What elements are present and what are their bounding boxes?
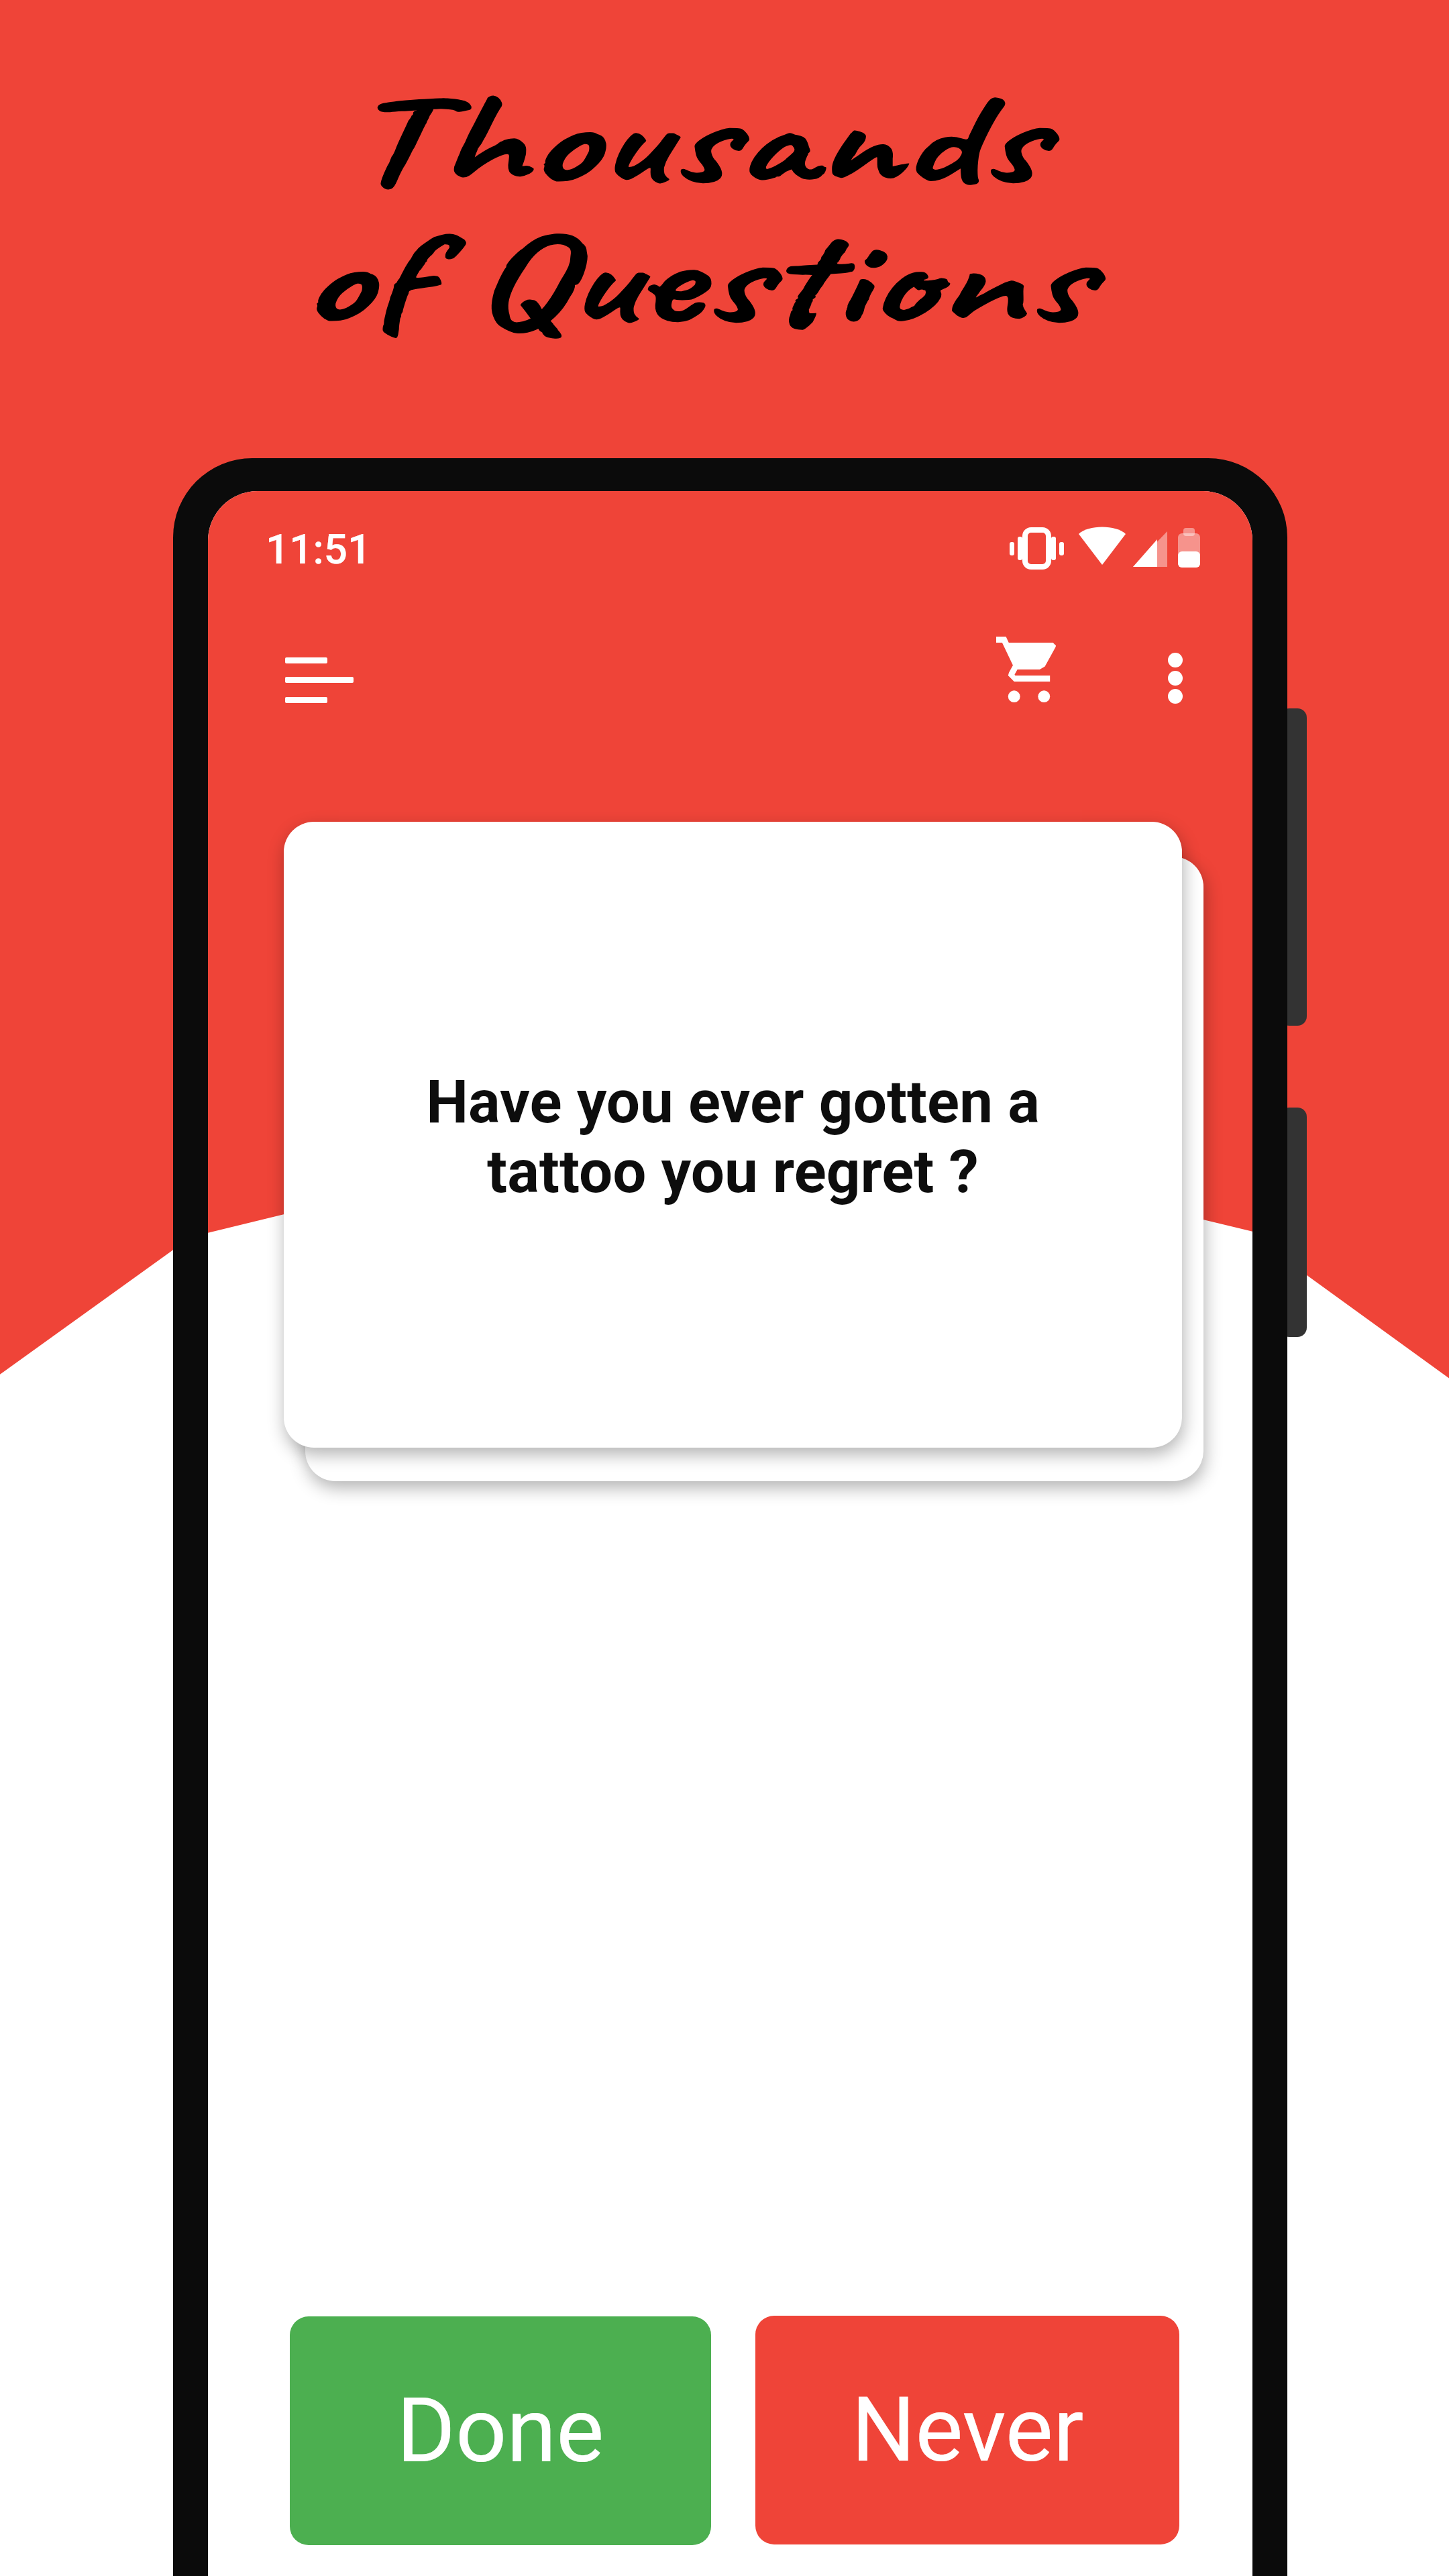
staticText: Never [851, 2377, 1084, 2483]
staticText: Done [396, 2378, 604, 2483]
button[interactable]: Menu [262, 636, 376, 720]
button[interactable]: Never [755, 2316, 1179, 2544]
staticText: Have you ever gotten a tattoo you regret… [426, 1067, 1040, 1207]
staticText: Thousands of Questions [299, 56, 1089, 362]
staticText: 11:51 [266, 525, 372, 574]
button[interactable]: Shopping cart [986, 633, 1073, 720]
button[interactable]: More options [1134, 633, 1221, 720]
button[interactable]: Done [290, 2316, 711, 2545]
